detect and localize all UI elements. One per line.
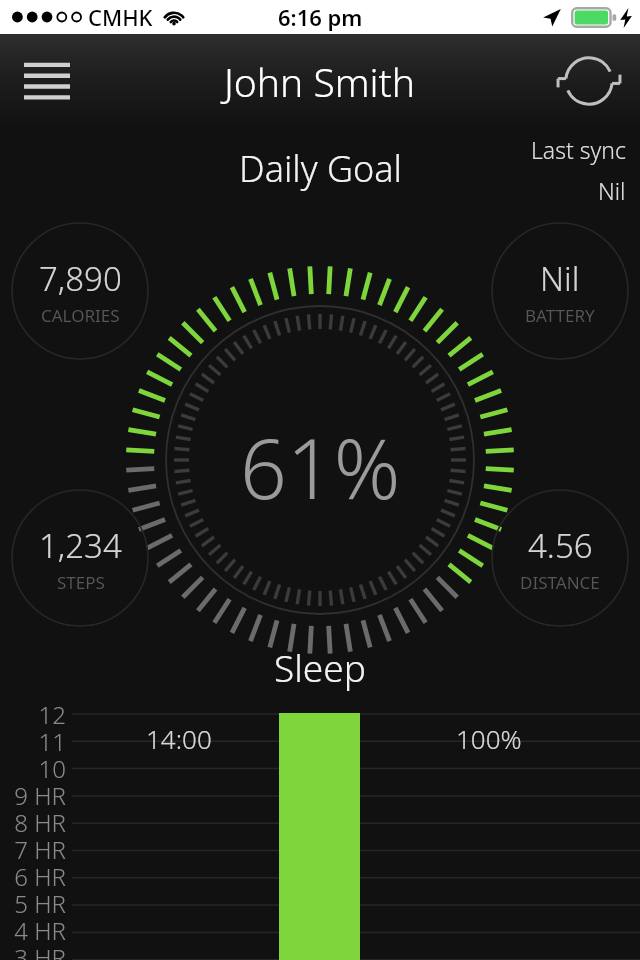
staticText: John Smith — [224, 55, 416, 108]
staticText: 9 HR — [14, 779, 66, 806]
staticText: DISTANCE — [520, 571, 600, 594]
staticText: Last sync — [531, 134, 626, 165]
staticText: CMHK — [88, 2, 153, 32]
staticText: 12 HR — [2, 698, 66, 725]
staticText: STEPS — [57, 571, 105, 594]
staticText: 1,234 — [39, 523, 122, 568]
staticText: 11 HR — [2, 725, 66, 752]
button[interactable]: 1,234 — [11, 489, 149, 627]
staticText: 3 HR — [14, 941, 66, 960]
staticText: Nil — [598, 175, 626, 206]
button[interactable]: 4.56 — [491, 489, 629, 627]
button[interactable]: Nil — [491, 222, 629, 360]
staticText: 100% — [456, 721, 522, 756]
staticText: 6:16 pm — [278, 2, 363, 32]
staticText: 10 HR — [2, 752, 66, 779]
staticText: 5 HR — [14, 887, 66, 914]
button[interactable]: Sync — [552, 44, 626, 118]
button[interactable]: 7,890 — [11, 222, 149, 360]
button[interactable]: Menu — [16, 46, 78, 116]
staticText: 8 HR — [14, 806, 66, 833]
staticText: Nil — [540, 256, 580, 301]
staticText: 7,890 — [39, 256, 122, 301]
staticText: 61% — [240, 411, 401, 523]
staticText: Daily Goal — [239, 144, 402, 193]
staticText: CALORIES — [41, 304, 120, 327]
staticText: 14:00 — [146, 721, 212, 756]
staticText: BATTERY — [525, 304, 595, 327]
staticText: 7 HR — [14, 833, 66, 860]
staticText: 4.56 — [528, 523, 593, 568]
staticText: Sleep — [274, 642, 366, 692]
staticText: 4 HR — [14, 914, 66, 941]
staticText: 6 HR — [14, 860, 66, 887]
